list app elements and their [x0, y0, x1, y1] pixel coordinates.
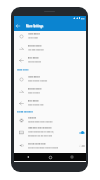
staticText: Volume Setting — [28, 60, 41, 62]
staticText: On/Off sound mode — [28, 143, 46, 146]
staticText: More Settings — [26, 24, 44, 28]
staticText: Home Button — [28, 32, 40, 35]
staticText: Recents Button — [28, 44, 42, 47]
staticText: When disabled tap to hide bar, navigatio… — [28, 131, 54, 137]
button[interactable]: On/Off sound mode — [14, 141, 86, 154]
staticText: Open Google Assistant — [28, 80, 48, 82]
staticText: Back Button — [28, 99, 39, 102]
button[interactable]: Home Button — [14, 31, 86, 43]
staticText: On/Off sound mode — [28, 142, 46, 145]
staticText: Vibrate when button pressed — [28, 120, 53, 122]
staticText: Open Google Now — [28, 104, 44, 106]
staticText: Hide when tabs connected — [28, 127, 52, 130]
staticText: Back Button — [28, 56, 39, 59]
staticText: Lock screen — [28, 37, 38, 39]
button[interactable]: Back Button — [14, 98, 86, 110]
staticText: Vibration — [28, 117, 37, 120]
staticText: LONG CLICK — [17, 68, 29, 71]
button[interactable]: Vibration — [14, 115, 86, 127]
staticText: Recents Button — [28, 45, 42, 48]
staticText: Volume Setting — [28, 61, 41, 63]
staticText: Lock screen — [28, 36, 38, 38]
button[interactable]: Home Button — [14, 74, 86, 86]
button[interactable]: Back Button — [14, 55, 86, 67]
staticText: Vibrate when button pressed — [28, 121, 53, 123]
staticText: Recents Button — [28, 87, 42, 90]
staticText: Open Google Assistant — [28, 79, 48, 81]
staticText: Open Camera — [28, 91, 40, 93]
staticText: Last app switching — [28, 48, 44, 50]
button[interactable]: Recents Button — [14, 43, 86, 55]
button[interactable]: Recent apps — [64, 153, 80, 161]
staticText: OTHER SETTINGS — [17, 110, 33, 113]
staticText: Home Button — [28, 76, 40, 79]
staticText: Home Button — [28, 75, 40, 78]
staticText: Last app switching — [28, 49, 44, 51]
staticText: On/Off sound when button pressed — [28, 147, 58, 149]
staticText: Open Camera — [28, 92, 40, 94]
staticText: Vibration — [28, 116, 37, 119]
button[interactable]: Home — [42, 153, 58, 161]
staticText: Home Button — [28, 33, 40, 36]
button[interactable]: Navigate up — [14, 22, 22, 30]
staticText: LONG CLICK — [17, 69, 29, 72]
staticText: Open Google Now — [28, 103, 44, 105]
staticText: More Settings — [26, 25, 44, 29]
button[interactable]: Back — [20, 153, 36, 161]
staticText: 87% — [81, 18, 85, 20]
staticText: Back Button — [28, 100, 39, 103]
staticText: Recents Button — [28, 88, 42, 91]
staticText: 87% — [81, 17, 85, 19]
staticText: Hide when tabs connected — [28, 126, 52, 129]
staticText: When disabled tap to hide bar, navigatio… — [28, 130, 54, 136]
staticText: OTHER SETTINGS — [17, 111, 33, 114]
button[interactable]: Recents Button — [14, 86, 86, 98]
staticText: On/Off sound when button pressed — [28, 146, 58, 148]
staticText: Back Button — [28, 57, 39, 60]
button[interactable]: Hide when tabs connected — [14, 127, 86, 141]
